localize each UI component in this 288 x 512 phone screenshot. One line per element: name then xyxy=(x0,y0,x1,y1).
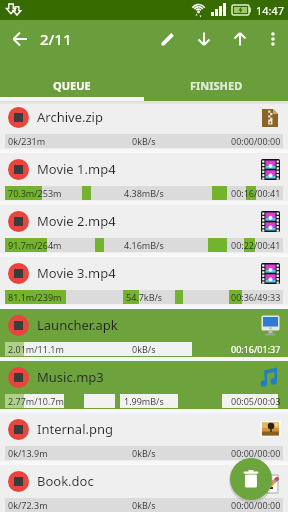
button[interactable]: QUEUE xyxy=(0,58,144,101)
staticText: 2/11 xyxy=(40,29,72,49)
button[interactable] xyxy=(8,159,29,180)
button[interactable]: Launcher.apk xyxy=(0,309,288,361)
staticText: 0kB/s xyxy=(132,447,156,459)
button[interactable] xyxy=(8,315,29,336)
button[interactable] xyxy=(8,107,29,128)
staticText: 00:36/49:33 xyxy=(231,291,281,303)
staticText: 70.3m/253m xyxy=(8,187,62,199)
staticText: 81.1m/239m xyxy=(8,291,62,303)
staticText: 0kB/s xyxy=(132,343,156,355)
button[interactable] xyxy=(186,20,222,58)
staticText: Launcher.apk xyxy=(37,316,118,334)
button[interactable]: Archive.zip xyxy=(0,101,288,153)
staticText: 00:16/01:37 xyxy=(231,343,281,355)
staticText: 14:47 xyxy=(256,3,285,18)
staticText: Archive.zip xyxy=(37,108,103,126)
button[interactable] xyxy=(150,20,186,58)
staticText: 1.99mB/s xyxy=(124,395,164,407)
staticText: Book.doc xyxy=(37,472,94,490)
staticText: 4.38mB/s xyxy=(124,187,164,199)
button[interactable] xyxy=(0,20,40,58)
button[interactable]: Internal.png xyxy=(0,413,288,465)
staticText: 0kB/s xyxy=(132,499,156,511)
staticText: 0k/231m xyxy=(8,135,46,147)
staticText: QUEUE xyxy=(53,78,91,93)
staticText: FINISHED xyxy=(190,78,243,93)
button[interactable]: Movie 3.mp4 xyxy=(0,257,288,309)
staticText: 91.7m/264m xyxy=(8,239,62,251)
button[interactable]: Movie 2.mp4 xyxy=(0,205,288,257)
button[interactable]: Book.doc xyxy=(0,465,288,512)
staticText: 0k/72.3m xyxy=(8,499,48,511)
button[interactable]: FINISHED xyxy=(144,58,288,101)
button[interactable] xyxy=(8,367,29,388)
staticText: 00:00/00:00 xyxy=(231,135,281,147)
button[interactable] xyxy=(222,20,258,58)
staticText: Movie 1.mp4 xyxy=(37,160,116,178)
staticText: 00:00/00:00 xyxy=(231,499,281,511)
button[interactable] xyxy=(8,419,29,440)
staticText: Movie 2.mp4 xyxy=(37,212,116,230)
button[interactable]: Music.mp3 xyxy=(0,361,288,413)
staticText: 00:16/00:41 xyxy=(231,187,281,199)
staticText: 00:05/00:03 xyxy=(231,395,281,407)
staticText: 54.7kB/s xyxy=(126,291,163,303)
staticText: 2.77m/10.7m xyxy=(8,395,64,407)
button[interactable] xyxy=(230,458,272,500)
staticText: Internal.png xyxy=(37,420,114,438)
staticText: 2.01m/11.1m xyxy=(8,343,64,355)
staticText: Movie 3.mp4 xyxy=(37,264,116,282)
staticText: Music.mp3 xyxy=(37,368,104,386)
staticText: 4.16mB/s xyxy=(124,239,164,251)
button[interactable] xyxy=(258,20,288,58)
staticText: 00:22/00:41 xyxy=(231,239,281,251)
staticText: 0k/13.9m xyxy=(8,447,48,459)
button[interactable] xyxy=(8,471,29,492)
staticText: 00:00/00:00 xyxy=(231,447,281,459)
button[interactable] xyxy=(8,211,29,232)
button[interactable]: Movie 1.mp4 xyxy=(0,153,288,205)
staticText: 0kB/s xyxy=(132,135,156,147)
button[interactable] xyxy=(8,263,29,284)
